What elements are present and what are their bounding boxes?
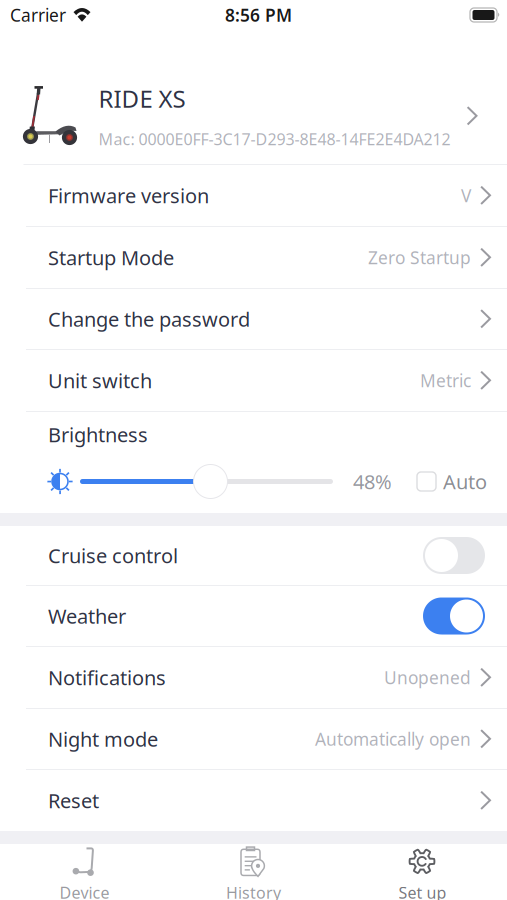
button[interactable]: Device — [0, 844, 169, 900]
button[interactable]: Weather — [0, 586, 507, 647]
staticText: Brightness — [48, 421, 148, 448]
staticText: Notifications — [48, 664, 166, 691]
staticText: Reset — [48, 787, 99, 814]
staticText: Weather — [48, 603, 126, 629]
staticText: Device — [59, 882, 109, 900]
staticText: Firmware version — [48, 182, 209, 209]
staticText: History — [226, 882, 281, 900]
staticText: Auto — [443, 468, 487, 495]
staticText: Night mode — [48, 726, 158, 752]
staticText: Mac: 0000E0FF-3C17-D293-8E48-14FE2E4DA21… — [98, 128, 450, 149]
staticText: Unopened — [384, 666, 471, 689]
staticText: Metric — [420, 369, 471, 392]
button[interactable]: Night mode — [0, 709, 507, 770]
button[interactable]: Auto — [417, 468, 487, 495]
staticText: 48% — [353, 468, 392, 495]
staticText: Change the password — [48, 306, 250, 332]
staticText: Startup Mode — [48, 244, 174, 271]
button[interactable]: Unit switch — [0, 350, 507, 412]
button[interactable]: RIDE XS — [0, 68, 507, 165]
staticText: Cruise control — [48, 542, 178, 569]
button[interactable]: History — [169, 844, 338, 900]
staticText: 8:56 PM — [225, 3, 292, 26]
staticText: Set up — [398, 882, 446, 900]
button[interactable]: Cruise control — [0, 526, 507, 586]
staticText: V — [461, 184, 471, 207]
button[interactable]: Change the password — [0, 289, 507, 350]
staticText: Unit switch — [48, 367, 152, 394]
staticText: Zero Startup — [368, 246, 471, 269]
staticText: RIDE XS — [98, 82, 185, 114]
staticText: Automatically open — [315, 727, 471, 750]
button[interactable]: Reset — [0, 770, 507, 831]
button[interactable]: Notifications — [0, 647, 507, 709]
button[interactable]: Startup Mode — [0, 227, 507, 289]
button[interactable]: Firmware version — [0, 165, 507, 227]
button[interactable]: Set up — [338, 844, 507, 900]
staticText: Carrier — [10, 3, 66, 26]
